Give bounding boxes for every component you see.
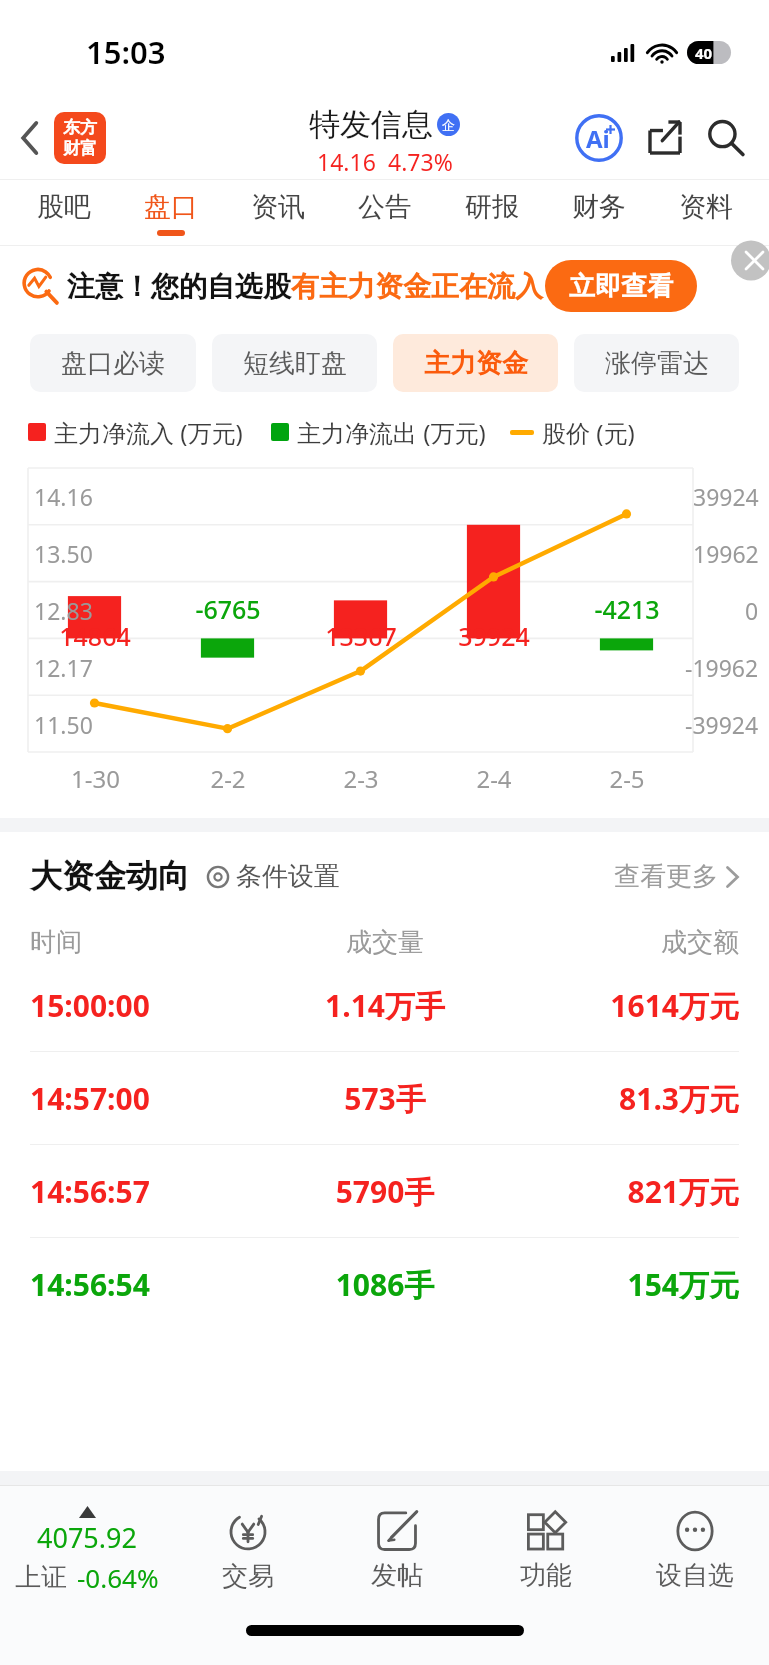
button[interactable]: Close banner	[729, 246, 769, 286]
button[interactable]: 查看更多	[614, 860, 739, 893]
staticText: 1-30	[71, 762, 120, 795]
button[interactable]: 主力资金	[393, 334, 558, 392]
staticText: 财富	[63, 138, 97, 159]
staticText: 2-5	[609, 762, 645, 795]
staticText: -6765	[195, 592, 261, 626]
staticText: 14:57:00	[30, 1078, 267, 1119]
button[interactable]: 4075.92	[0, 1485, 173, 1615]
staticText: 14.16	[34, 481, 93, 512]
staticText: 12.17	[34, 652, 93, 683]
button[interactable]: 15:00:00	[0, 959, 769, 1052]
staticText: 39924	[693, 481, 759, 512]
staticText: 4.73%	[388, 146, 453, 177]
staticText: 盘口必读	[61, 347, 165, 380]
staticText: 40	[695, 43, 713, 63]
button[interactable]: 立即查看	[545, 260, 697, 312]
staticText: 股吧	[37, 190, 91, 224]
staticText: -4213	[594, 592, 660, 626]
staticText: 主力净流出 (万元)	[297, 416, 486, 449]
button[interactable]: Search	[699, 111, 753, 165]
staticText: 15:03	[86, 31, 166, 73]
button[interactable]: 资料	[652, 180, 759, 246]
button[interactable]: Share	[639, 112, 691, 164]
staticText: 特发信息	[309, 105, 433, 144]
staticText: Ai	[586, 122, 610, 155]
staticText: 发帖	[371, 1559, 423, 1592]
staticText: 条件设置	[236, 860, 340, 893]
button[interactable]: 资讯	[224, 180, 331, 246]
staticText: 有主力资金正在流入	[291, 269, 543, 304]
staticText: 大资金动向	[30, 856, 190, 896]
button[interactable]: 短线盯盘	[212, 334, 377, 392]
button[interactable]: 盘口必读	[30, 334, 196, 392]
staticText: 资料	[679, 190, 733, 224]
staticText: 盘口	[144, 190, 198, 224]
staticText: 14:56:54	[30, 1264, 267, 1305]
staticText: 2-3	[343, 762, 379, 795]
button[interactable]: 股吧	[10, 180, 117, 246]
staticText: 14:56:57	[30, 1171, 267, 1212]
button[interactable]: 14:56:57	[0, 1145, 769, 1238]
staticText: -0.64%	[77, 1560, 159, 1595]
staticText: 主力资金	[424, 347, 528, 380]
staticText: 时间	[30, 926, 267, 959]
staticText: 4075.92	[37, 1519, 137, 1556]
staticText: 821万元	[503, 1171, 739, 1212]
staticText: 涨停雷达	[605, 347, 709, 380]
staticText: 12.83	[34, 595, 93, 626]
button[interactable]: 设自选	[620, 1485, 769, 1615]
staticText: 5790手	[267, 1171, 503, 1212]
staticText: -39924	[685, 709, 759, 740]
staticText: 主力净流入 (万元)	[54, 416, 243, 449]
staticText: 注意！您的自选股	[67, 269, 291, 304]
staticText: 1614万元	[503, 985, 739, 1026]
staticText: 短线盯盘	[243, 347, 347, 380]
staticText: -19962	[685, 652, 759, 683]
staticText: 81.3万元	[503, 1078, 739, 1119]
button[interactable]: 发帖	[322, 1485, 471, 1615]
staticText: 573手	[267, 1078, 503, 1119]
staticText: 交易	[222, 1560, 274, 1593]
staticText: 查看更多	[614, 860, 718, 893]
staticText: 15:00:00	[30, 985, 267, 1026]
staticText: 研报	[465, 190, 519, 224]
button[interactable]: 功能	[471, 1485, 620, 1615]
button[interactable]: East Money home	[54, 112, 106, 164]
button[interactable]: AI assistant	[571, 110, 627, 166]
staticText: 上证	[15, 1561, 67, 1594]
staticText: 1086手	[267, 1264, 503, 1305]
button[interactable]: 盘口	[117, 180, 224, 246]
staticText: 企	[442, 117, 455, 133]
staticText: 立即查看	[569, 270, 673, 303]
staticText: 股价 (元)	[542, 416, 635, 449]
staticText: 成交量	[267, 926, 503, 959]
button[interactable]: 财务	[545, 180, 652, 246]
staticText: 39924	[458, 619, 530, 653]
staticText: 功能	[520, 1559, 572, 1592]
staticText: 14.16	[317, 146, 376, 177]
staticText: 公告	[358, 190, 412, 224]
staticText: 2-4	[476, 762, 512, 795]
button[interactable]: 14:56:54	[0, 1238, 769, 1330]
staticText: 财务	[572, 190, 626, 224]
button[interactable]: 公告	[331, 180, 438, 246]
button[interactable]: 条件设置	[206, 860, 340, 893]
staticText: 13367	[325, 619, 397, 653]
staticText: 13.50	[34, 538, 93, 569]
staticText: 11.50	[34, 709, 93, 740]
button[interactable]: 交易	[173, 1485, 322, 1615]
staticText: 19962	[693, 538, 759, 569]
staticText: 2-2	[210, 762, 246, 795]
staticText: 14864	[59, 619, 131, 653]
staticText: 1.14万手	[267, 985, 503, 1026]
staticText: 资讯	[251, 190, 305, 224]
staticText: 成交额	[503, 926, 739, 959]
staticText: 154万元	[503, 1264, 739, 1305]
staticText: 设自选	[656, 1559, 734, 1592]
staticText: 0	[745, 595, 759, 626]
button[interactable]: 14:57:00	[0, 1052, 769, 1145]
button[interactable]: 涨停雷达	[574, 334, 739, 392]
button[interactable]: 研报	[438, 180, 545, 246]
staticText: 东方	[63, 117, 97, 138]
button[interactable]: Back	[6, 114, 54, 162]
